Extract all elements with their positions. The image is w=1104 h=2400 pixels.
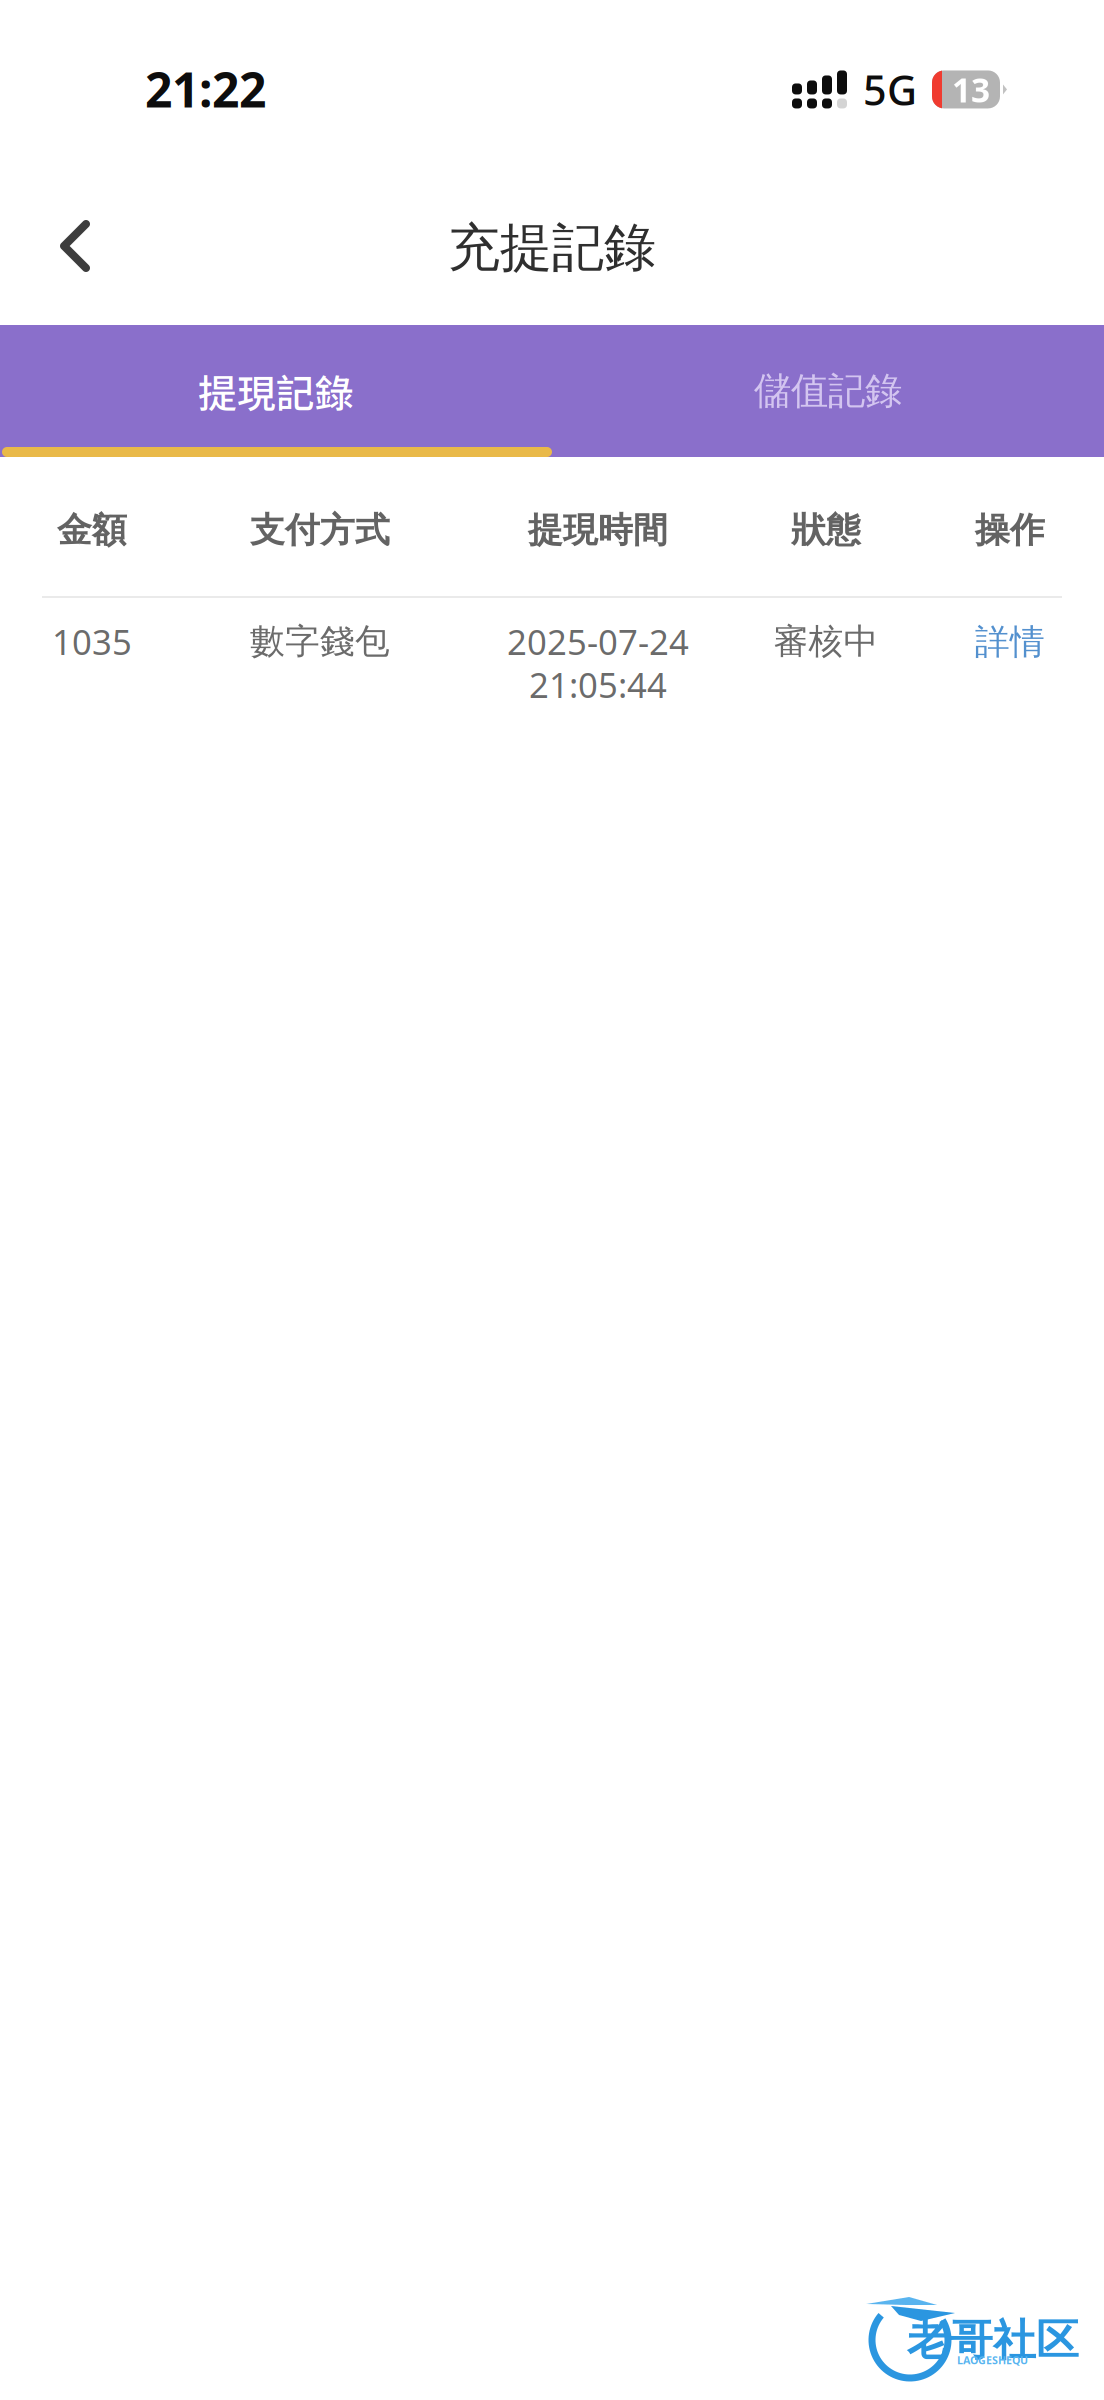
staticText: 1035 [52,618,132,664]
staticText: 支付方式 [250,509,390,552]
staticText: 狀態 [791,509,861,552]
staticText: 數字錢包 [250,620,390,663]
button[interactable]: Back [23,194,127,298]
staticText: 2025-07-24 [507,618,689,664]
button[interactable]: 提現記錄 [0,325,552,457]
staticText: 提現記錄 [198,363,354,419]
staticText: 詳情 [975,621,1045,663]
staticText: 13 [952,67,990,112]
button[interactable]: 儲值記錄 [552,325,1104,457]
staticText: 儲值記錄 [754,368,902,414]
staticText: 21:05:44 [529,661,667,707]
staticText: LAOGESHEQU [957,2353,1028,2367]
button[interactable]: 詳情 [912,599,1104,685]
staticText: 金額 [57,509,127,552]
staticText: 提現時間 [528,509,668,552]
staticText: 5G [863,62,917,117]
staticText: 老哥社区 [907,2314,1079,2366]
staticText: 審核中 [773,620,878,663]
staticText: 21:22 [145,57,266,121]
staticText: 充提記錄 [448,216,656,280]
staticText: 操作 [975,509,1045,552]
